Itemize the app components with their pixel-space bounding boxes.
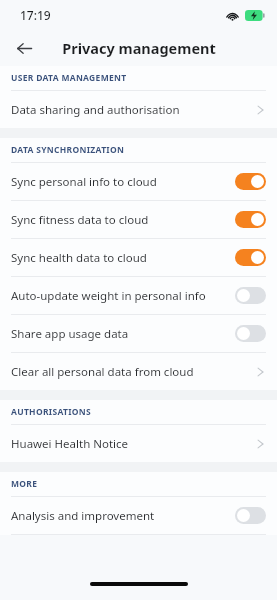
button[interactable]: Clear all personal data from cloud xyxy=(0,353,277,390)
button[interactable]: Auto-update weight in personal info xyxy=(0,277,277,314)
staticText: AUTHORISATIONS xyxy=(11,406,92,418)
staticText: Share app usage data xyxy=(11,326,227,342)
button[interactable]: Data sharing and authorisation xyxy=(0,91,277,128)
staticText: USER DATA MANAGEMENT xyxy=(11,72,127,84)
staticText: MORE xyxy=(11,478,38,490)
staticText: Clear all personal data from cloud xyxy=(11,364,257,380)
button[interactable]: Sync health data to cloud xyxy=(0,239,277,276)
staticText: Auto-update weight in personal info xyxy=(11,288,227,304)
staticText: 17:19 xyxy=(20,7,51,23)
button[interactable]: Share app usage data xyxy=(0,315,277,352)
staticText: Privacy management xyxy=(62,38,216,58)
button[interactable]: Huawei Health Notice xyxy=(0,425,277,462)
staticText: Sync personal info to cloud xyxy=(11,174,227,190)
staticText: DATA SYNCHRONIZATION xyxy=(11,144,125,156)
staticText: Analysis and improvement xyxy=(11,508,227,524)
button[interactable]: Sync personal info to cloud xyxy=(0,163,277,200)
button[interactable]: Back xyxy=(6,30,42,66)
button[interactable]: Analysis and improvement xyxy=(0,497,277,534)
staticText: Sync fitness data to cloud xyxy=(11,212,227,228)
button[interactable]: Sync fitness data to cloud xyxy=(0,201,277,238)
staticText: Sync health data to cloud xyxy=(11,250,227,266)
staticText: Data sharing and authorisation xyxy=(11,102,257,118)
staticText: Huawei Health Notice xyxy=(11,436,257,452)
